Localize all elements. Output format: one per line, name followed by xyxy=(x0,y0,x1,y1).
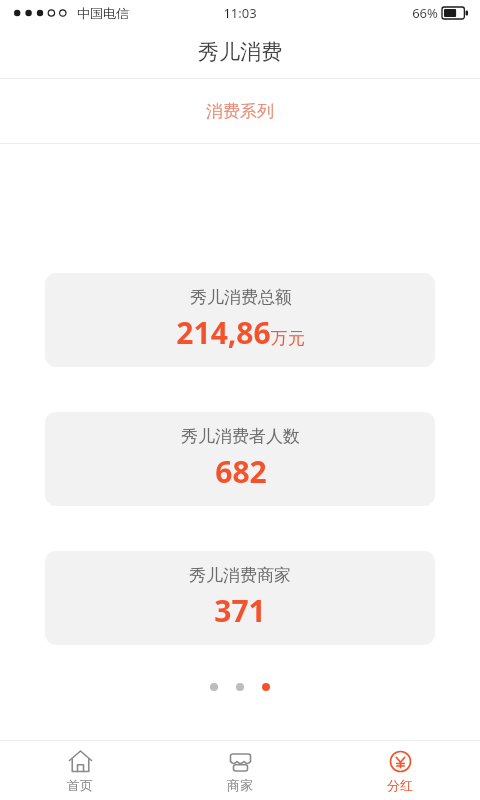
other: 分红 xyxy=(388,749,413,774)
button[interactable]: 消费系列 xyxy=(0,79,480,143)
staticText: 消费系列 xyxy=(206,101,274,122)
button[interactable]: 秀儿消费商家 xyxy=(45,551,435,645)
button[interactable]: 商家 xyxy=(160,743,320,799)
staticText: 371 xyxy=(214,590,266,631)
staticText: 秀儿消费 xyxy=(198,39,282,65)
button[interactable]: 秀儿消费者人数 xyxy=(45,412,435,506)
staticText: 66% xyxy=(412,4,438,22)
staticText: 秀儿消费商家 xyxy=(189,565,291,586)
other: 首页 xyxy=(68,749,93,774)
button[interactable]: 分红 xyxy=(320,743,480,799)
staticText: 首页 xyxy=(67,777,93,793)
staticText: 秀儿消费总额 xyxy=(190,287,292,308)
staticText: 682 xyxy=(215,451,267,492)
staticText: 11:03 xyxy=(223,4,257,22)
button[interactable]: 秀儿消费总额 xyxy=(45,273,435,367)
button[interactable]: 首页 xyxy=(0,743,160,799)
staticText: 中国电信 xyxy=(77,5,129,21)
staticText: 214,86万元 xyxy=(176,312,305,353)
staticText: 商家 xyxy=(227,777,253,793)
staticText: 分红 xyxy=(387,777,413,793)
staticText: 秀儿消费者人数 xyxy=(181,426,300,447)
other: 商家 xyxy=(228,749,253,774)
